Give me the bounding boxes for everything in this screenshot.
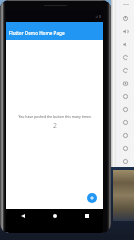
button[interactable]: Increment (87, 193, 97, 203)
button[interactable]: Emulator control 7 (116, 90, 134, 103)
button[interactable]: Back (6, 209, 39, 223)
button[interactable]: Emulator control 12 (116, 155, 134, 167)
button[interactable]: Emulator control 9 (116, 116, 134, 129)
button[interactable]: Emulator control 6 (116, 77, 134, 90)
button[interactable]: Emulator control 8 (116, 103, 134, 116)
button[interactable]: Emulator control 3 (116, 38, 134, 51)
button[interactable]: Emulator control 4 (116, 51, 134, 64)
button[interactable]: Recents (71, 209, 103, 223)
button[interactable]: Emulator control 5 (116, 64, 134, 77)
staticText: 2 (53, 121, 57, 131)
button[interactable]: Emulator control 2 (116, 25, 134, 38)
button[interactable]: Flutter Demo Home Page (6, 22, 103, 40)
button[interactable]: Home (39, 209, 71, 223)
staticText: Flutter Demo Home Page (9, 30, 65, 36)
staticText: You have pushed the button this many tim… (18, 114, 92, 119)
button[interactable]: Emulator control 10 (116, 129, 134, 142)
button[interactable]: Emulator control 11 (116, 142, 134, 155)
button[interactable]: Emulator control 1 (116, 12, 134, 25)
